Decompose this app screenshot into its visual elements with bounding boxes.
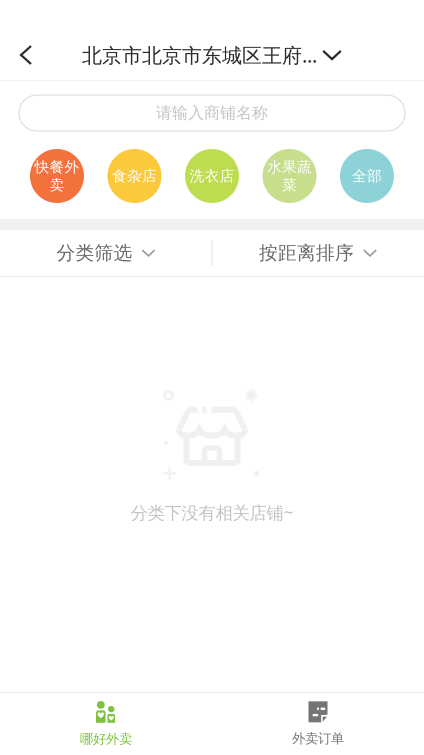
button[interactable]: 快餐外卖 (30, 149, 84, 203)
staticText: 快餐外 (34, 158, 79, 176)
staticText: 北京市北京市东城区王府... (82, 42, 317, 68)
button[interactable]: 北京市北京市东城区王府... (82, 33, 342, 77)
button[interactable]: 食杂店 (107, 149, 161, 203)
staticText: 请输入商铺名称 (156, 103, 268, 123)
button[interactable]: Back (0, 33, 52, 77)
staticText: 卖 (49, 176, 64, 194)
button[interactable]: 按距离排序 (212, 230, 424, 276)
button[interactable]: 水果蔬菜 (262, 149, 316, 203)
button[interactable]: 请输入商铺名称 (19, 95, 405, 131)
staticText: 食杂店 (112, 167, 157, 185)
staticText: 哪好外卖 (80, 731, 132, 747)
button[interactable]: 全部 (340, 149, 394, 203)
button[interactable]: 外卖订单 (212, 693, 424, 755)
staticText: 分类筛选 (56, 241, 132, 264)
staticText: 按距离排序 (259, 241, 354, 264)
staticText: 菜 (282, 176, 297, 194)
button[interactable]: 洗衣店 (185, 149, 239, 203)
staticText: 水果蔬 (267, 158, 312, 176)
staticText: 全部 (352, 167, 382, 185)
staticText: 外卖订单 (292, 730, 344, 747)
button[interactable]: 分类筛选 (0, 230, 212, 276)
staticText: 分类下没有相关店铺~ (130, 501, 293, 524)
staticText: 洗衣店 (189, 167, 234, 185)
button[interactable]: 哪好外卖 (0, 693, 212, 755)
